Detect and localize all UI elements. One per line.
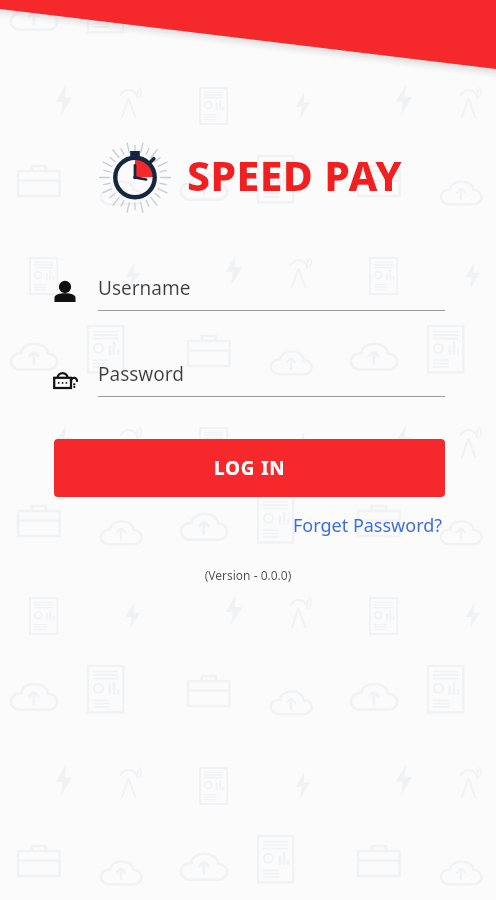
other: Password xyxy=(50,364,80,394)
other: Username xyxy=(50,278,80,308)
button[interactable]: LOG IN xyxy=(54,439,445,497)
button[interactable]: Password xyxy=(50,361,445,397)
staticText: LOG IN xyxy=(214,455,286,481)
staticText: Forget Password? xyxy=(293,513,443,538)
button[interactable]: Username xyxy=(50,275,445,311)
staticText: SPEED PAY xyxy=(187,147,403,203)
staticText: Password xyxy=(98,361,184,387)
staticText: Username xyxy=(98,275,191,301)
button[interactable]: Forget Password? xyxy=(291,511,445,540)
staticText: (Version - 0.0.0) xyxy=(0,567,496,583)
